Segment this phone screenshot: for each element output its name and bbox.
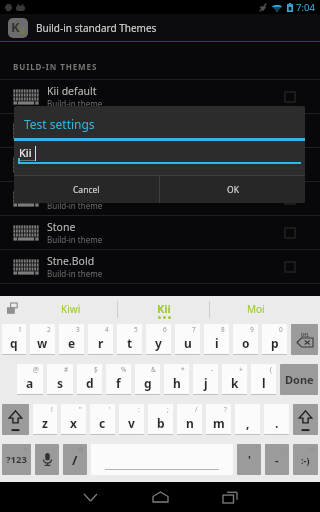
button[interactable]: 1	[2, 324, 26, 355]
staticText: .	[275, 415, 279, 431]
staticText: DEL	[301, 332, 310, 338]
button[interactable]: /	[177, 404, 202, 435]
button[interactable]: !	[33, 404, 57, 435]
button[interactable]: ,	[235, 404, 260, 435]
button[interactable]: Kiwi	[25, 296, 117, 322]
staticText: ;	[167, 405, 169, 414]
button[interactable]: Stone	[0, 216, 320, 250]
button[interactable]: 6	[146, 324, 171, 355]
staticText: *	[181, 365, 185, 374]
staticText: l	[262, 375, 266, 391]
button[interactable]: 0	[262, 324, 287, 355]
button[interactable]: 9	[233, 324, 258, 355]
staticText: m	[213, 415, 225, 431]
button[interactable]: Clipboard	[0, 296, 25, 322]
staticText: BUILD-IN THEMES	[13, 61, 98, 72]
button[interactable]: #	[47, 364, 73, 395]
button[interactable]: +	[222, 364, 247, 395]
button[interactable]: Cancel	[14, 176, 159, 203]
button[interactable]: Voice input	[35, 444, 59, 475]
button[interactable]: 4	[88, 324, 113, 355]
staticText: "	[79, 405, 82, 414]
staticText: '	[248, 452, 251, 467]
staticText: y	[155, 335, 162, 351]
staticText: '	[109, 405, 111, 414]
button[interactable]: .	[264, 404, 289, 435]
staticText: b	[157, 415, 165, 431]
button[interactable]: "	[61, 404, 86, 435]
staticText: u	[184, 335, 192, 351]
button[interactable]: 3	[59, 324, 84, 355]
staticText: Done	[285, 372, 314, 387]
staticText: %	[121, 365, 127, 374]
staticText: ;-)	[309, 445, 315, 453]
button[interactable]: @	[17, 364, 43, 395]
staticText: f	[116, 375, 121, 391]
button[interactable]: "	[237, 444, 261, 475]
staticText: x	[70, 415, 77, 431]
staticText: Kiwi	[61, 302, 81, 316]
button[interactable]: Kii default	[0, 80, 320, 114]
staticText: p	[271, 335, 279, 351]
staticText: d	[86, 375, 94, 391]
button[interactable]: Home	[133, 482, 187, 512]
button[interactable]: Up	[8, 18, 28, 38]
button[interactable]: Shift	[293, 404, 318, 435]
staticText: 2	[47, 325, 51, 334]
button[interactable]: Space	[91, 444, 233, 475]
staticText: 7:04	[296, 1, 315, 14]
staticText: Build-in theme	[47, 98, 103, 109]
button[interactable]: @	[63, 444, 87, 475]
button[interactable]: Recents	[203, 482, 257, 512]
button[interactable]: ;	[148, 404, 173, 435]
button[interactable]: OK	[160, 176, 305, 203]
button[interactable]: Stne.Light	[0, 114, 320, 148]
button[interactable]: Stne.Bold	[0, 250, 320, 284]
button[interactable]: $	[77, 364, 102, 395]
button[interactable]: ?	[206, 404, 231, 435]
button[interactable]: Gingerbread	[0, 148, 320, 182]
staticText: Build-in theme	[47, 200, 103, 211]
staticText: :-)	[301, 454, 310, 466]
staticText: e	[68, 335, 76, 351]
staticText: OK	[227, 184, 239, 196]
staticText: K	[11, 18, 20, 36]
button[interactable]: Ice cream	[0, 182, 320, 216]
button[interactable]: *	[164, 364, 189, 395]
staticText: -	[275, 452, 279, 467]
staticText: !	[51, 405, 53, 414]
staticText: +	[239, 365, 243, 374]
staticText: Build-in theme	[47, 234, 103, 245]
button[interactable]: 2	[30, 324, 55, 355]
button[interactable]: Shift	[2, 404, 29, 435]
button[interactable]: -	[193, 364, 218, 395]
button[interactable]: _	[265, 444, 289, 475]
button[interactable]: Kii	[118, 296, 209, 322]
button[interactable]: ^	[2, 444, 31, 475]
staticText: ii	[20, 25, 25, 36]
staticText: j	[204, 375, 208, 391]
button[interactable]: (	[251, 364, 276, 395]
button[interactable]: Moi	[210, 296, 302, 322]
staticText: Ice cream	[47, 186, 96, 200]
staticText: h	[173, 375, 181, 391]
staticText: /	[72, 451, 78, 469]
staticText: s	[57, 375, 64, 391]
button[interactable]: &	[135, 364, 160, 395]
button[interactable]: :	[119, 404, 144, 435]
staticText: Build-in standard Themes	[36, 21, 157, 35]
button[interactable]: %	[106, 364, 131, 395]
button[interactable]: Back	[63, 482, 117, 512]
button[interactable]: '	[90, 404, 115, 435]
button[interactable]: Delete	[291, 324, 318, 355]
button[interactable]: 7	[175, 324, 200, 355]
button[interactable]: 8	[204, 324, 229, 355]
staticText: w	[37, 335, 48, 351]
staticText: /	[195, 405, 198, 414]
button[interactable]: Done	[280, 364, 318, 395]
button[interactable]: 5	[117, 324, 142, 355]
button[interactable]: ;-)	[293, 444, 318, 475]
staticText: Stne.Bold	[47, 254, 95, 268]
